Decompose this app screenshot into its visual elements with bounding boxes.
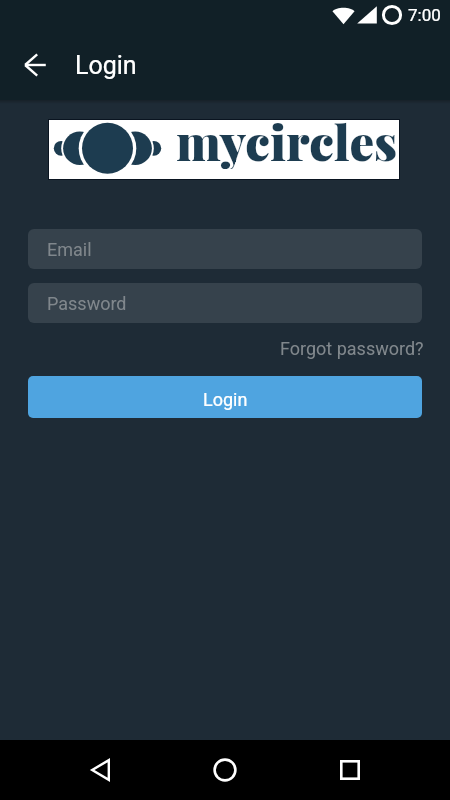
button[interactable]: Recent apps xyxy=(325,745,375,795)
staticText: 7:00 xyxy=(408,5,441,25)
staticText: Login xyxy=(203,389,248,410)
staticText: Login xyxy=(75,51,137,80)
staticText: mycircles xyxy=(176,108,398,169)
button[interactable]: Back xyxy=(75,745,125,795)
button[interactable]: Password xyxy=(28,283,422,323)
button[interactable]: Login xyxy=(28,376,422,418)
button[interactable]: Back xyxy=(13,43,57,87)
button[interactable]: Forgot password? xyxy=(280,338,424,359)
staticText: Email xyxy=(47,239,92,260)
staticText: Password xyxy=(47,293,127,314)
button[interactable]: Email xyxy=(28,229,422,269)
staticText: Forgot password? xyxy=(280,338,424,359)
button[interactable]: Home xyxy=(200,745,250,795)
